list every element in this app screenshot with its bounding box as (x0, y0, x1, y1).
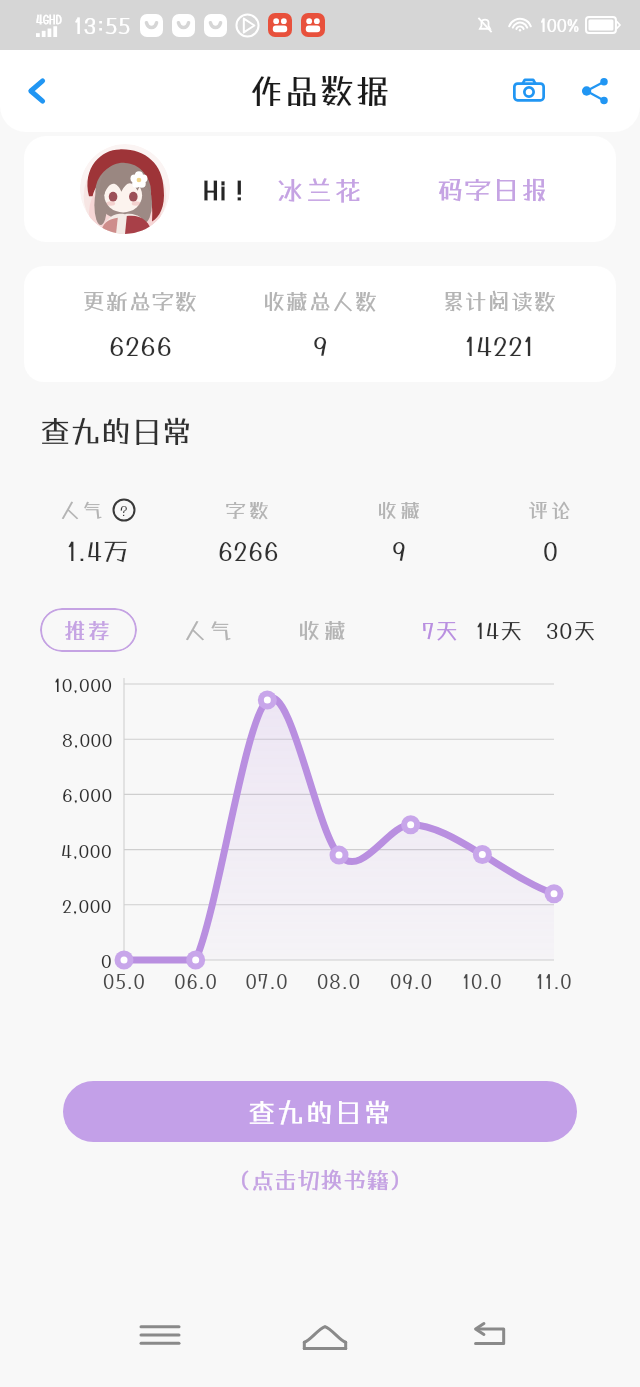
staticText: 评论 (528, 498, 574, 522)
staticText: 收藏总人数 (263, 288, 379, 314)
staticText: ? (120, 502, 128, 519)
staticText: 累计阅读数 (442, 288, 558, 314)
staticText: 收藏 (298, 617, 351, 643)
staticText: 14221 (465, 330, 535, 361)
staticText: 收藏 (377, 498, 423, 522)
button[interactable]: 字数 (173, 498, 324, 565)
staticText: 7天 (422, 617, 459, 643)
button[interactable]: （点击切换书籍） (222, 1160, 418, 1199)
button[interactable]: 收藏 (324, 498, 475, 565)
button[interactable]: 查九的日常 (38, 412, 195, 451)
staticText: 8,000 (62, 729, 113, 750)
staticText: （点击切换书籍） (228, 1166, 412, 1193)
staticText: 9 (313, 330, 329, 361)
staticText: 2,000 (62, 895, 113, 916)
button[interactable]: Hi ! (24, 136, 616, 242)
staticText: 更新总字数 (83, 288, 199, 314)
button[interactable]: 推荐 (40, 608, 137, 652)
button[interactable]: 冰兰花 (275, 172, 367, 207)
staticText: 0 (543, 536, 559, 565)
staticText: 100% (540, 15, 580, 35)
staticText: 作品数据 (249, 71, 391, 111)
button[interactable]: Home (287, 1297, 363, 1373)
staticText: 06.0 (174, 970, 218, 992)
staticText: 6266 (218, 536, 280, 565)
button[interactable]: 累计阅读数 (410, 288, 589, 361)
button[interactable]: 人气 (22, 498, 173, 565)
button[interactable]: 14天 (472, 608, 528, 652)
button[interactable]: Back (452, 1297, 528, 1373)
staticText: 07.0 (245, 970, 289, 992)
staticText: 查九的日常 (248, 1096, 393, 1128)
button[interactable]: 收藏 (292, 608, 357, 652)
staticText: 30天 (546, 617, 597, 643)
staticText: 码字日报 (437, 174, 550, 205)
button[interactable]: 7天 (418, 608, 463, 652)
staticText: 14天 (476, 617, 524, 643)
staticText: 6,000 (62, 784, 113, 805)
staticText: 1.4万 (67, 536, 129, 565)
button[interactable]: 评论 (475, 498, 626, 565)
staticText: 冰兰花 (277, 174, 365, 205)
staticText: 6266 (109, 330, 173, 361)
staticText: 09.0 (390, 970, 433, 992)
staticText: 08.0 (317, 970, 361, 992)
staticText: 11.0 (536, 970, 573, 992)
staticText: 人气 (184, 617, 237, 643)
button[interactable]: 人气 (178, 608, 243, 652)
staticText: 0 (101, 950, 113, 971)
button[interactable]: 码字日报 (433, 170, 554, 209)
staticText: 推荐 (64, 617, 113, 643)
staticText: 13:55 (74, 12, 132, 38)
button[interactable]: Camera (504, 66, 554, 116)
button[interactable]: 收藏总人数 (231, 288, 410, 361)
button[interactable]: 30天 (542, 608, 601, 652)
staticText: 4GHD (36, 13, 62, 26)
staticText: 05.0 (103, 970, 146, 992)
button[interactable]: Recents (122, 1297, 198, 1373)
button[interactable]: Back (12, 66, 62, 116)
staticText: 查九的日常 (40, 414, 193, 449)
staticText: Hi ! (203, 174, 245, 205)
button[interactable]: 更新总字数 (51, 288, 231, 361)
staticText: 人气 (60, 498, 106, 522)
staticText: 字数 (226, 498, 272, 522)
staticText: 10.0 (462, 970, 503, 992)
staticText: 10,000 (54, 674, 113, 695)
button[interactable]: Share (570, 66, 620, 116)
button[interactable]: 查九的日常 (63, 1081, 577, 1142)
staticText: 4,000 (61, 840, 113, 861)
staticText: 9 (392, 536, 407, 565)
